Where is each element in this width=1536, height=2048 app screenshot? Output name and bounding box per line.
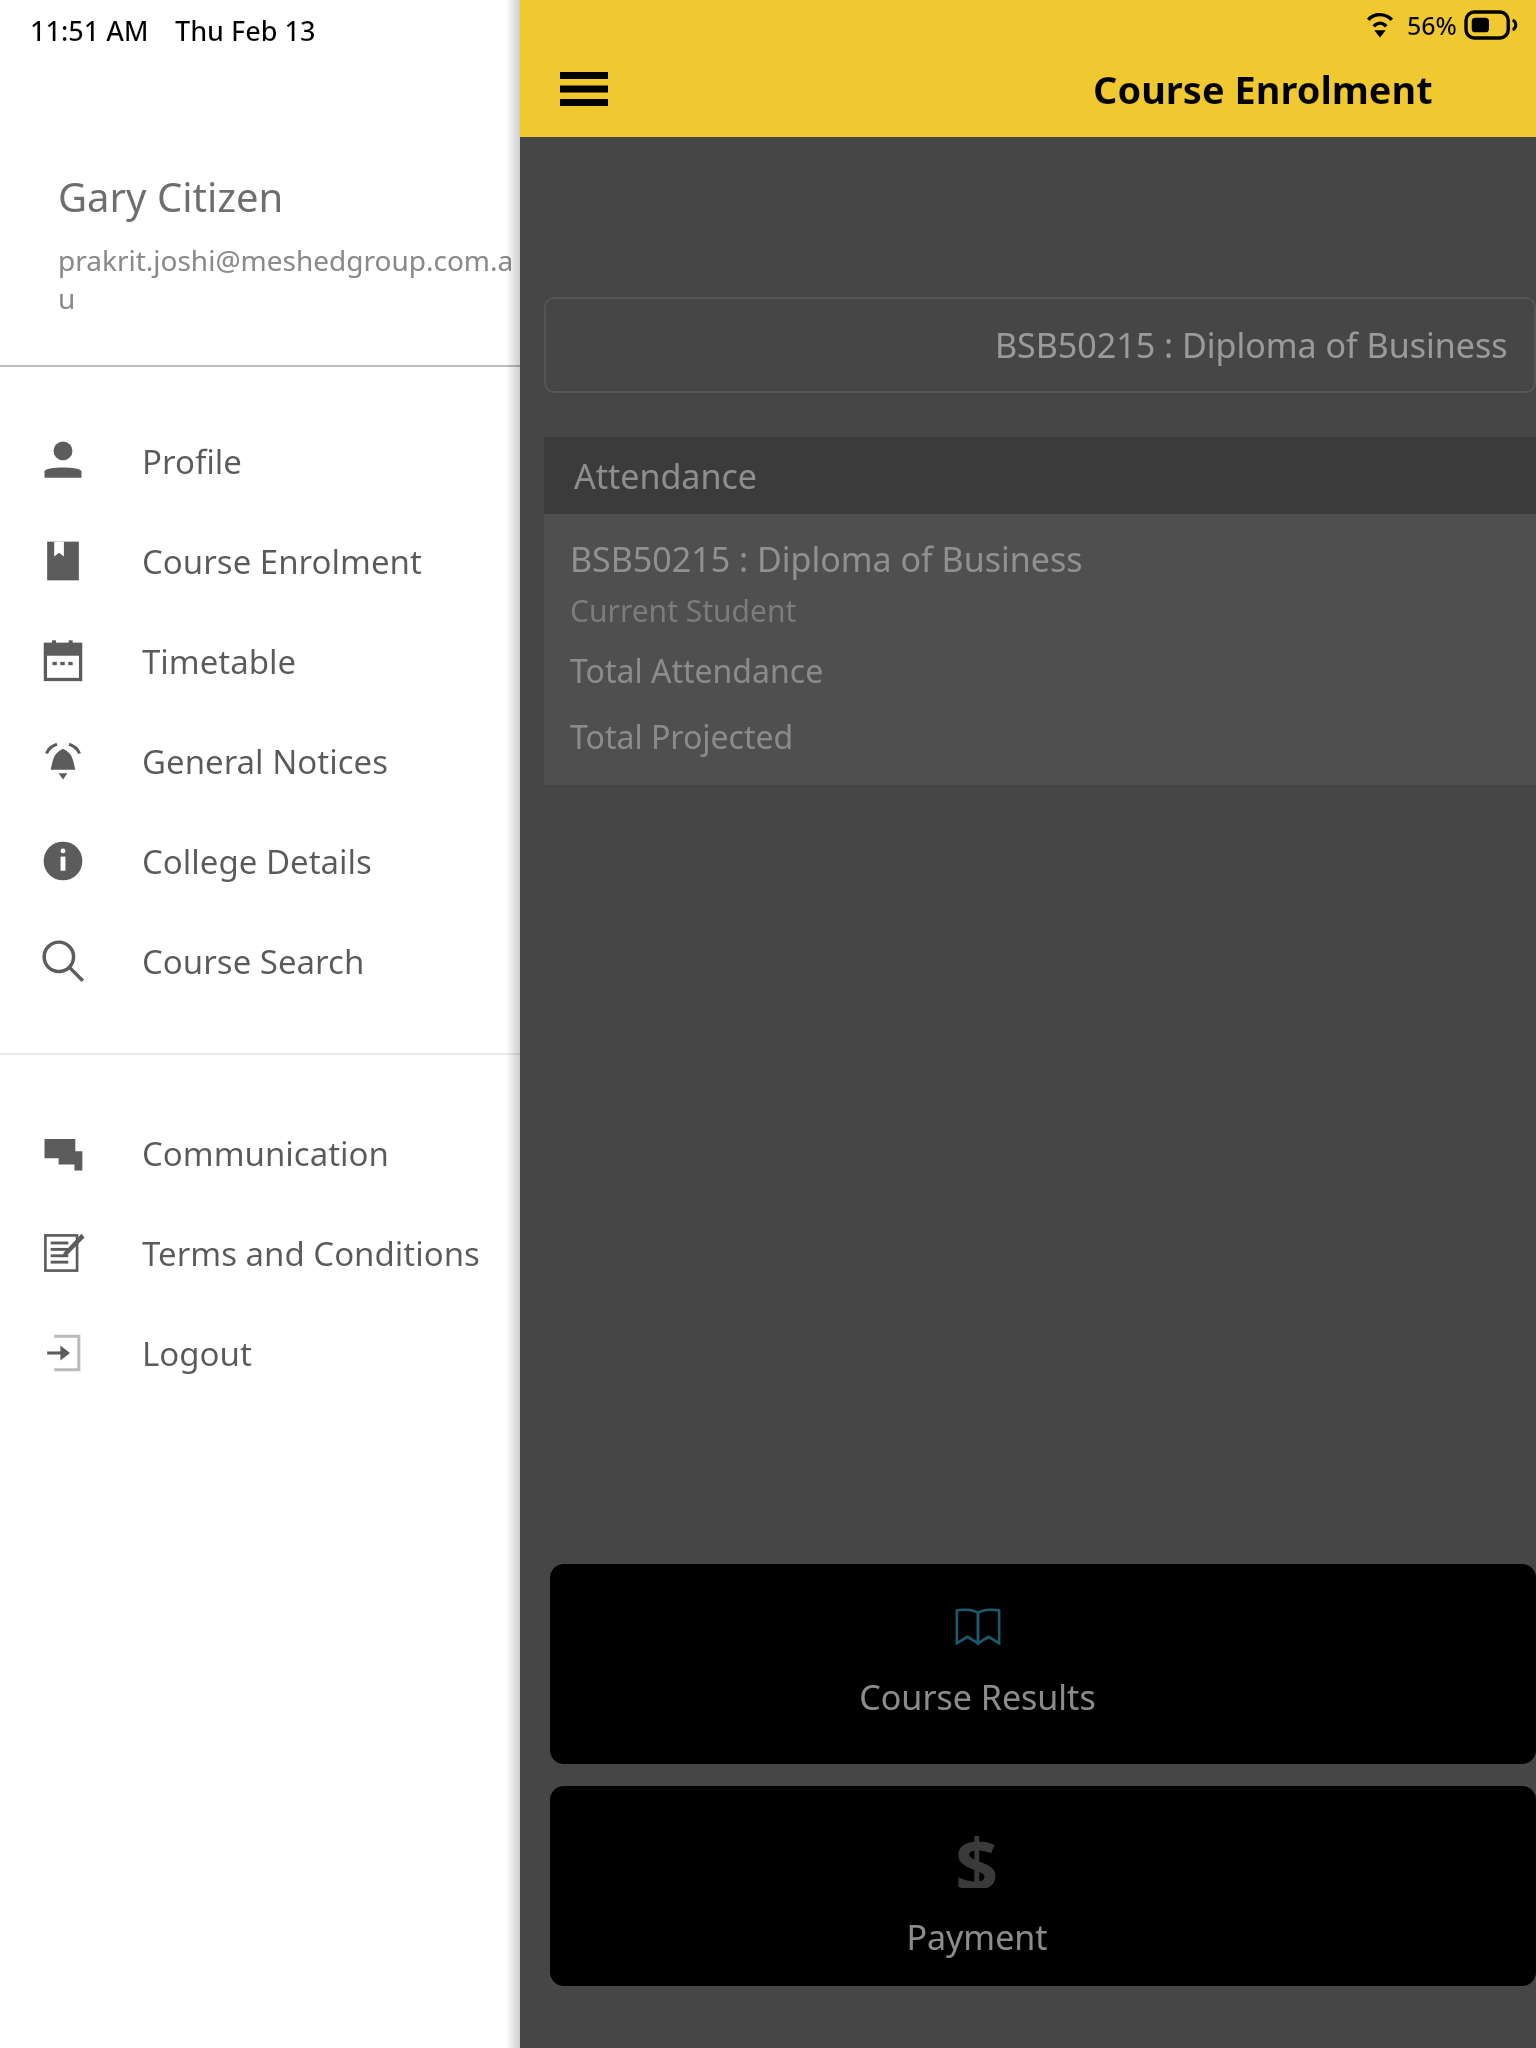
staticText: Thu Feb 13 (175, 12, 316, 49)
staticText: Gary Citizen (58, 169, 284, 223)
staticText: Total Projected (570, 715, 794, 759)
staticText: Profile (142, 439, 242, 484)
staticText: Terms and Conditions (142, 1231, 480, 1276)
staticText: prakrit.joshi@meshedgroup.com.au (58, 241, 520, 317)
button[interactable]: General Notices (0, 711, 520, 811)
staticText: BSB50215 : Diploma of Business (995, 322, 1508, 368)
staticText: Payment (906, 1914, 1048, 1960)
staticText: Current Student (570, 590, 797, 631)
staticText: College Details (142, 839, 372, 884)
staticText: Attendance (574, 453, 757, 499)
button[interactable]: Course Search (0, 911, 520, 1011)
button[interactable]: Communication (0, 1103, 520, 1203)
staticText: Course Enrolment (1093, 63, 1433, 115)
button[interactable]: Course Enrolment (0, 511, 520, 611)
staticText: $ (955, 1812, 999, 1888)
staticText: Logout (142, 1331, 252, 1376)
staticText: 11:51 AM (30, 12, 149, 49)
staticText: Course Enrolment (142, 539, 422, 584)
button[interactable]: BSB50215 : Diploma of Business (544, 297, 1536, 393)
button[interactable]: $ (550, 1786, 1536, 1986)
staticText: 56% (1407, 8, 1457, 42)
button[interactable]: Course Results (550, 1564, 1536, 1764)
staticText: Total Attendance (570, 649, 824, 693)
button[interactable]: Timetable (0, 611, 520, 711)
button[interactable]: College Details (0, 811, 520, 911)
button[interactable]: Logout (0, 1303, 520, 1403)
button[interactable]: Profile (0, 411, 520, 511)
button[interactable]: Terms and Conditions (0, 1203, 520, 1303)
staticText: BSB50215 : Diploma of Business (570, 536, 1083, 582)
staticText: Timetable (142, 639, 297, 684)
staticText: Communication (142, 1131, 389, 1176)
button[interactable]: Open navigation drawer (538, 43, 630, 135)
staticText: General Notices (142, 739, 388, 784)
staticText: Course Results (859, 1674, 1096, 1720)
staticText: Course Search (142, 939, 365, 984)
